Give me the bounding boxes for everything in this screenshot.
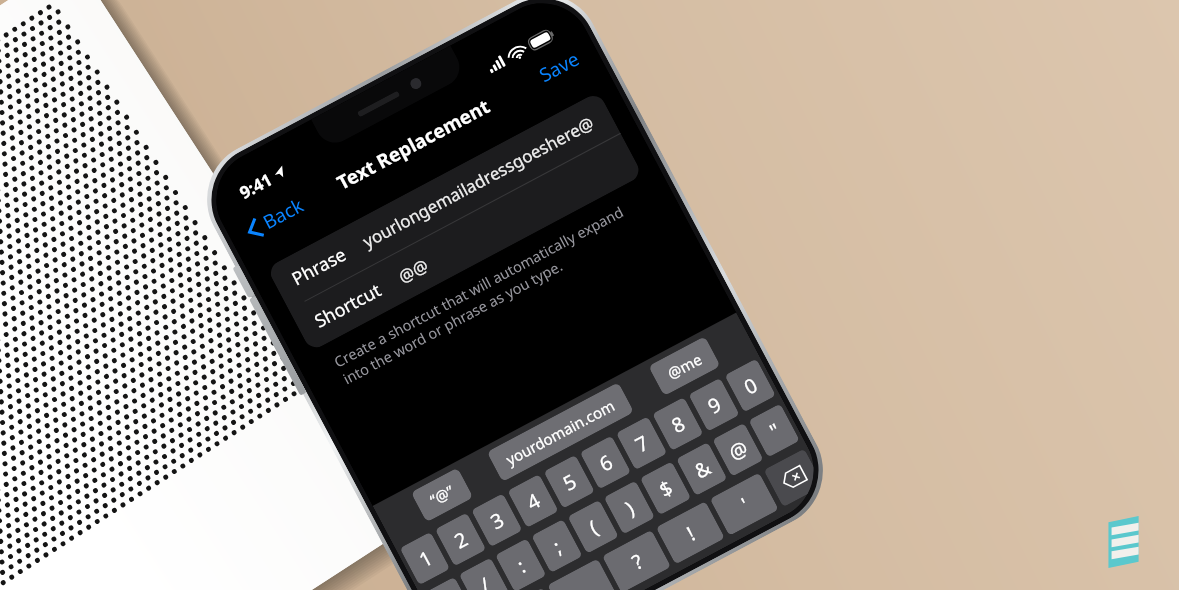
button[interactable]: . [492, 587, 562, 590]
button[interactable]: ( [567, 500, 619, 554]
button[interactable]: 7 [616, 416, 667, 470]
staticText: yourdomain.com [502, 395, 618, 469]
button[interactable]: Phrase [266, 91, 621, 310]
staticText: ) [621, 495, 639, 521]
button[interactable]: 9 [688, 378, 740, 432]
staticText: 7 [630, 429, 653, 458]
staticText: yourlongemailadressgoeshere@y… [358, 110, 599, 253]
staticText: $ [654, 474, 677, 503]
button[interactable]: 2 [435, 512, 486, 566]
staticText: Text Replacement [332, 93, 495, 196]
staticText: ( [584, 514, 602, 541]
button[interactable]: ; [531, 519, 583, 573]
button[interactable]: yourdomain.com [487, 382, 634, 482]
button[interactable]: Shortcut [289, 134, 643, 352]
button[interactable]: ) [604, 480, 655, 534]
button[interactable]: @me [648, 336, 721, 396]
staticText: & [689, 454, 715, 485]
button[interactable]: ! [656, 501, 725, 564]
button[interactable]: 6 [580, 435, 631, 489]
staticText: 8 [666, 410, 690, 439]
staticText: @me [664, 349, 705, 383]
button[interactable]: & [676, 442, 727, 496]
staticText: Phrase [287, 242, 350, 291]
staticText: 4 [522, 487, 545, 516]
button[interactable]: @ [712, 423, 764, 477]
button[interactable]: ? [602, 530, 671, 590]
staticText: @ [724, 434, 752, 466]
staticText: @@ [394, 253, 432, 288]
button[interactable]: " [748, 403, 800, 457]
staticText: : [512, 552, 530, 579]
button[interactable]: 1 [400, 532, 450, 585]
button[interactable]: / [459, 557, 510, 590]
button[interactable]: ' [710, 472, 779, 536]
staticText: Shortcut [310, 277, 386, 333]
staticText: 5 [558, 467, 581, 497]
button[interactable]: 3 [471, 493, 523, 547]
staticText: Create a shortcut that will automaticall… [330, 190, 658, 388]
button[interactable]: Backspace [763, 448, 824, 507]
staticText: 3 [485, 506, 509, 535]
staticText: 1 [414, 544, 437, 573]
button[interactable]: 0 [724, 358, 776, 412]
button[interactable]: Logo [1097, 516, 1149, 568]
button[interactable]: 8 [652, 397, 704, 451]
staticText: / [475, 571, 495, 590]
staticText: 0 [739, 371, 762, 401]
button[interactable]: “@” [411, 467, 473, 522]
button[interactable]: 5 [543, 455, 595, 509]
staticText: “@” [426, 480, 458, 510]
button[interactable]: , [547, 558, 617, 590]
staticText: 9:41 [235, 168, 276, 204]
button[interactable]: - [423, 577, 474, 590]
button[interactable]: $ [640, 461, 691, 515]
staticText: " [764, 417, 785, 445]
staticText: ' [736, 491, 753, 517]
staticText: ? [627, 548, 647, 576]
staticText: ; [548, 533, 566, 560]
staticText: 9 [703, 390, 726, 420]
staticText: 6 [594, 448, 617, 478]
button[interactable]: Save [526, 37, 592, 96]
button[interactable]: : [495, 538, 546, 590]
button[interactable]: 4 [507, 474, 559, 528]
staticText: Save [535, 45, 584, 88]
staticText: Back [258, 192, 308, 235]
staticText: ! [682, 520, 700, 547]
button[interactable]: Back [235, 184, 316, 251]
staticText: 2 [449, 525, 472, 555]
